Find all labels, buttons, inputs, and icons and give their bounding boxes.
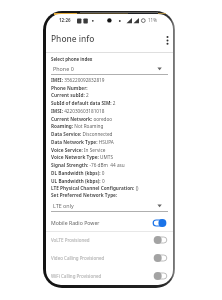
staticText: 12:26 bbox=[59, 17, 71, 23]
staticText: Video Calling Provisioned bbox=[51, 255, 105, 261]
staticText: Voice Network Type: UMTS bbox=[51, 154, 113, 160]
staticText: Current subId: 2 bbox=[51, 92, 89, 98]
staticText: 11% bbox=[148, 17, 157, 23]
staticText: IMSI: 422030603181018 bbox=[51, 108, 105, 114]
staticText: UL Bandwidth (kbps): 0 bbox=[51, 178, 105, 184]
staticText: Signal Strength: -76 dBm 44 asu bbox=[51, 162, 125, 168]
button[interactable]: VoLTE Provisioned bbox=[46, 233, 173, 248]
staticText: Select phone index bbox=[51, 56, 93, 62]
staticText: LTE only bbox=[53, 202, 74, 209]
button[interactable] bbox=[162, 34, 173, 47]
staticText: Data Service: Disconnected bbox=[51, 131, 113, 137]
staticText: Phone info bbox=[51, 33, 95, 44]
staticText: Voice Service: In Service bbox=[51, 147, 106, 153]
button[interactable]: WiFi Calling Provisioned bbox=[46, 269, 173, 284]
button[interactable] bbox=[152, 218, 168, 228]
staticText: Set Preferred Network Type: bbox=[51, 192, 118, 198]
staticText: LTE Physical Channel Configuration: () bbox=[51, 185, 139, 191]
staticText: VoLTE Provisioned bbox=[51, 237, 90, 243]
staticText: DL Bandwidth (kbps): 0 bbox=[51, 170, 105, 176]
button[interactable] bbox=[152, 271, 168, 281]
button[interactable] bbox=[152, 253, 168, 263]
staticText: Current Network: ooredoo bbox=[51, 116, 113, 122]
staticText: Mobile Radio Power bbox=[51, 219, 100, 226]
button[interactable]: Phone 0 bbox=[51, 64, 168, 76]
staticText: Phone 0 bbox=[53, 65, 74, 72]
staticText: Data Network Type: HSUPA bbox=[51, 139, 114, 145]
staticText: Phone Number: bbox=[51, 85, 88, 91]
staticText: WiFi Calling Provisioned bbox=[51, 273, 102, 279]
button[interactable]: LTE only bbox=[51, 201, 168, 212]
button[interactable]: Video Calling Provisioned bbox=[46, 251, 173, 266]
button[interactable]: Mobile Radio Power bbox=[46, 215, 173, 230]
button[interactable] bbox=[152, 235, 168, 245]
staticText: SubId of default data SIM: 2 bbox=[51, 100, 116, 106]
staticText: Roaming: Not Roaming bbox=[51, 123, 104, 129]
staticText: IMEI: 356220092832819 bbox=[51, 77, 105, 83]
